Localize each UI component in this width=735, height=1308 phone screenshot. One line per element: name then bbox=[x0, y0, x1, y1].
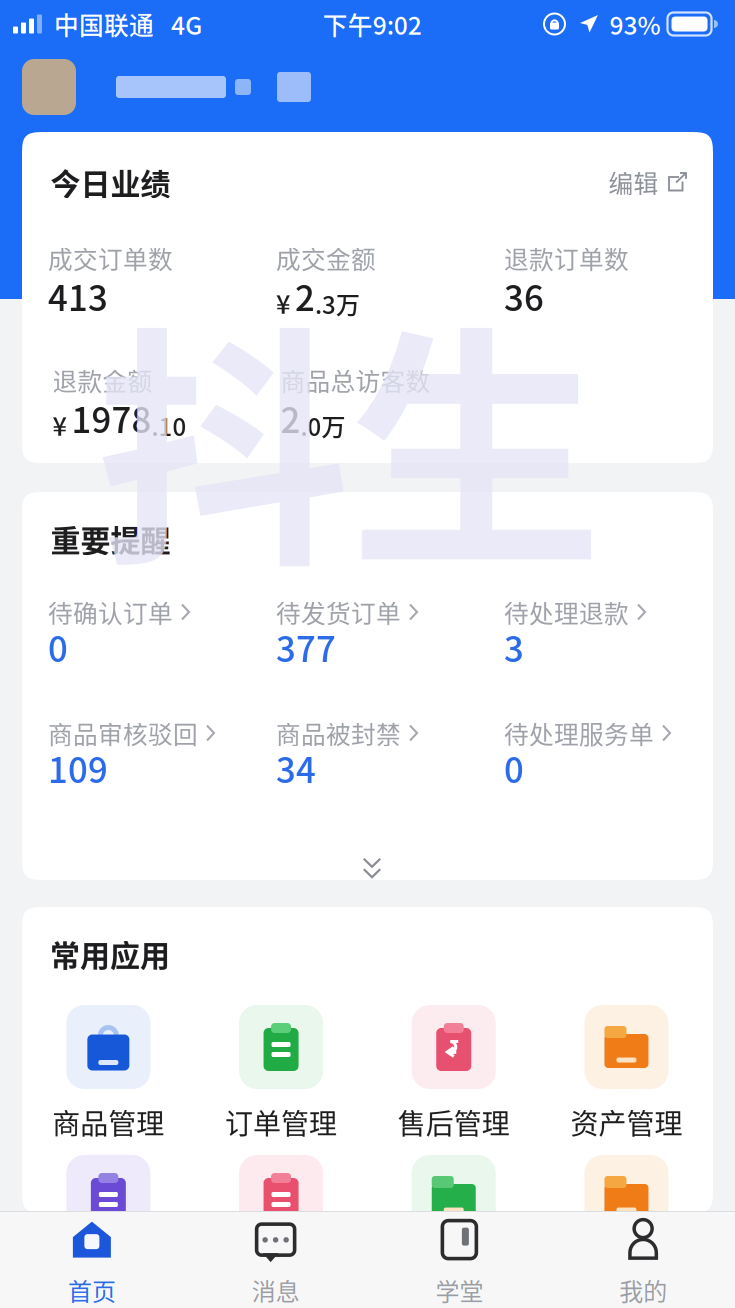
button[interactable]: 学堂 bbox=[367, 1212, 551, 1308]
button[interactable] bbox=[540, 1155, 713, 1287]
staticText: ¥ bbox=[52, 406, 66, 443]
staticText: .3万 bbox=[315, 286, 360, 321]
button[interactable]: 商品被封禁 bbox=[276, 716, 486, 837]
staticText: 编辑 bbox=[608, 164, 658, 200]
staticText: 重要提醒 bbox=[50, 517, 170, 560]
staticText: 下午9:02 bbox=[323, 6, 422, 42]
staticText: 4G bbox=[171, 6, 202, 42]
button[interactable]: 我的 bbox=[551, 1212, 735, 1308]
staticText: 售后管理 bbox=[398, 1102, 510, 1142]
button[interactable] bbox=[367, 1155, 540, 1287]
button[interactable]: 展开更多 bbox=[26, 837, 717, 899]
staticText: 3 bbox=[504, 622, 524, 672]
staticText: 学堂 bbox=[435, 1273, 483, 1307]
button[interactable]: 售后管理 bbox=[367, 1005, 540, 1137]
staticText: 93% bbox=[609, 6, 660, 42]
staticText: 退款金额 bbox=[52, 362, 152, 398]
staticText: 36 bbox=[504, 271, 544, 321]
staticText: 退款订单数 bbox=[504, 240, 629, 276]
staticText: 消息 bbox=[252, 1273, 300, 1307]
staticText: 首页 bbox=[68, 1273, 116, 1307]
staticText: 1978 bbox=[71, 393, 151, 443]
staticText: 2 bbox=[280, 393, 300, 443]
button[interactable] bbox=[195, 1155, 367, 1287]
button[interactable]: 编辑 bbox=[608, 164, 687, 200]
staticText: 待处理退款 bbox=[504, 594, 629, 630]
button[interactable]: 商品审核驳回 bbox=[48, 716, 258, 837]
staticText: 商品管理 bbox=[52, 1102, 164, 1142]
staticText: 商品总访客数 bbox=[280, 362, 430, 398]
staticText: 2 bbox=[295, 271, 315, 321]
button[interactable]: 订单管理 bbox=[195, 1005, 367, 1137]
button[interactable]: 待发货订单 bbox=[276, 595, 486, 716]
staticText: .0万 bbox=[300, 408, 345, 443]
button[interactable]: 待处理服务单 bbox=[504, 716, 714, 837]
button[interactable]: 消息 bbox=[184, 1212, 368, 1308]
staticText: 中国联通 bbox=[54, 6, 154, 42]
staticText: 抖生 bbox=[96, 250, 602, 617]
staticText: 我的 bbox=[619, 1273, 667, 1307]
staticText: 0 bbox=[48, 622, 68, 672]
staticText: 订单管理 bbox=[225, 1102, 337, 1142]
staticText: 109 bbox=[48, 743, 108, 793]
staticText: 今日业绩 bbox=[50, 160, 170, 204]
staticText: 待确认订单 bbox=[48, 594, 173, 630]
button[interactable]: 首页 bbox=[0, 1212, 184, 1308]
staticText: 377 bbox=[276, 622, 336, 672]
staticText: 资产管理 bbox=[570, 1102, 682, 1142]
button[interactable] bbox=[22, 1155, 195, 1287]
staticText: ¥ bbox=[276, 284, 290, 321]
button[interactable]: 资产管理 bbox=[540, 1005, 713, 1137]
staticText: 待处理服务单 bbox=[504, 715, 654, 751]
button[interactable]: 商品管理 bbox=[22, 1005, 195, 1137]
staticText: .10 bbox=[151, 408, 186, 443]
staticText: 常用应用 bbox=[50, 932, 170, 975]
staticText: 413 bbox=[48, 271, 108, 321]
staticText: 成交订单数 bbox=[48, 240, 173, 276]
staticText: 34 bbox=[276, 743, 316, 793]
button[interactable]: 待确认订单 bbox=[48, 595, 258, 716]
staticText: 商品被封禁 bbox=[276, 715, 401, 751]
staticText: 商品审核驳回 bbox=[48, 715, 198, 751]
button[interactable]: 待处理退款 bbox=[504, 595, 714, 716]
staticText: 成交金额 bbox=[276, 240, 376, 276]
staticText: 待发货订单 bbox=[276, 594, 401, 630]
staticText: 0 bbox=[504, 743, 524, 793]
